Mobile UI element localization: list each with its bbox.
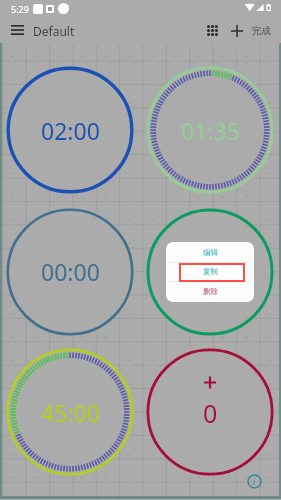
button[interactable] <box>147 208 273 334</box>
button[interactable]: 01:35 <box>147 67 273 193</box>
staticText: i <box>253 476 256 487</box>
staticText: 45:00 <box>41 397 100 428</box>
button[interactable]: 0 <box>147 349 273 475</box>
button[interactable]: 00:00 <box>7 208 133 334</box>
staticText: 完成 <box>252 25 271 37</box>
staticText: 00:00 <box>41 256 100 287</box>
staticText: 编辑 <box>203 248 218 257</box>
button[interactable]: Info <box>246 473 262 489</box>
staticText: 0 <box>203 396 218 430</box>
button[interactable]: 删除 <box>166 281 254 302</box>
button[interactable]: Add timer <box>224 18 249 43</box>
button[interactable]: 编辑 <box>166 242 254 262</box>
staticText: 5:29 <box>11 3 29 15</box>
staticText: 02:00 <box>41 115 100 146</box>
staticText: 01:35 <box>181 115 240 146</box>
button[interactable]: Apps <box>200 18 225 43</box>
button[interactable]: 02:00 <box>7 67 133 193</box>
button[interactable]: Menu <box>4 17 30 43</box>
staticText: 删除 <box>203 287 218 296</box>
staticText: Default <box>33 23 75 39</box>
button[interactable]: 复制 <box>166 262 254 281</box>
staticText: 复制 <box>203 267 218 276</box>
button[interactable]: 45:00 <box>7 349 133 475</box>
button[interactable]: 完成 <box>246 19 277 42</box>
